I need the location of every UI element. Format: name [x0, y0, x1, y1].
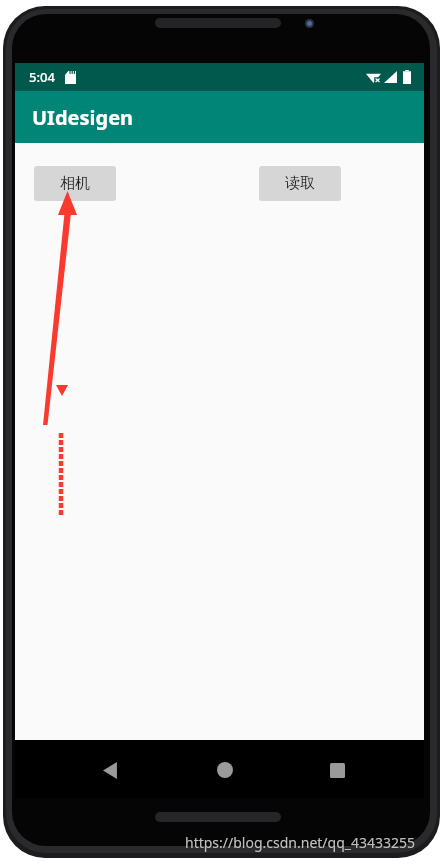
button[interactable]: 相机: [34, 166, 116, 201]
staticText: 读取: [285, 174, 315, 193]
button[interactable]: Recents: [315, 748, 359, 792]
button[interactable]: 读取: [259, 166, 341, 201]
staticText: 5:04: [29, 68, 55, 86]
staticText: https://blog.csdn.net/qq_43433255: [185, 833, 416, 852]
staticText: UIdesigen: [32, 104, 134, 131]
staticText: 相机: [60, 174, 90, 193]
button[interactable]: Back: [89, 748, 133, 792]
button[interactable]: Home: [203, 748, 247, 792]
